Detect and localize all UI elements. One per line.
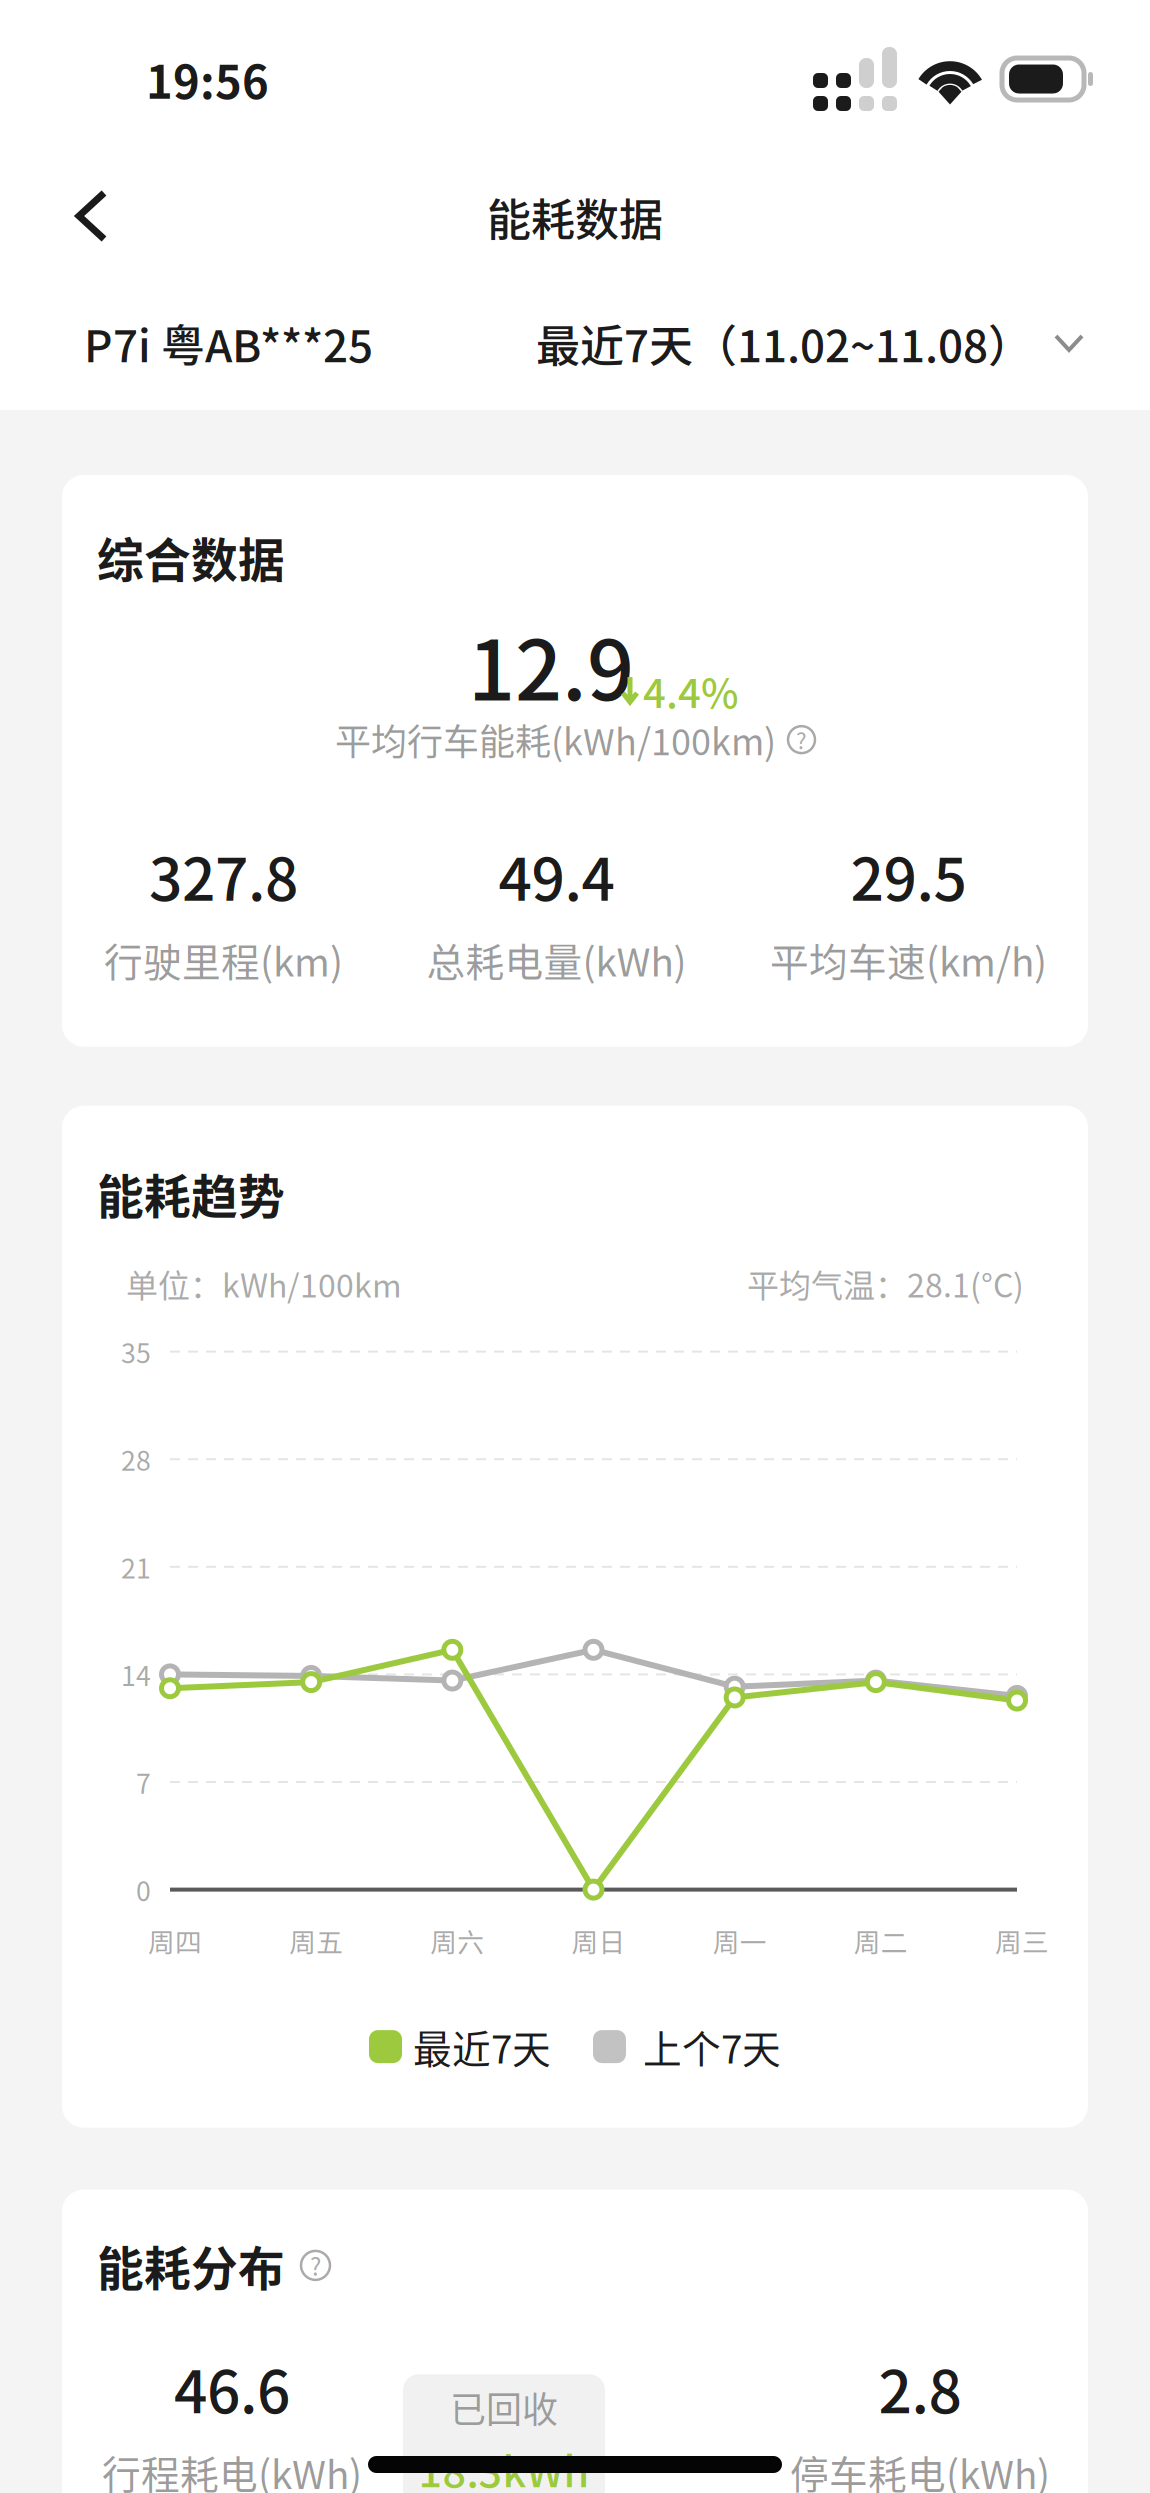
staticText: 周五 [289,1921,343,1960]
staticText: 327.8 [149,833,298,918]
staticText: 21 [121,1547,151,1586]
staticText: 综合数据 [97,523,285,591]
staticText: 周日 [571,1921,625,1960]
staticText: 上个7天 [643,2019,781,2075]
staticText: 12.9 [468,605,634,724]
staticText: 29.5 [850,833,966,918]
staticText: 已回收 [450,2381,558,2433]
staticText: 能耗数据 [487,185,663,249]
staticText: 能耗分布 [97,2232,285,2299]
staticText: 能耗趋势 [97,1160,285,1227]
staticText: 2.8 [878,2345,961,2430]
staticText: 行程耗电(kWh) [102,2444,362,2493]
staticText: 最近7天（11.02~11.08） [536,311,1032,375]
staticText: ? [796,723,807,756]
button[interactable]: Back [0,167,148,267]
staticText: 最近7天 [413,2019,551,2075]
staticText: 平均行车能耗(kWh/100km) [335,714,776,766]
staticText: 4.4% [643,662,739,719]
staticText: 停车耗电(kWh) [790,2444,1050,2493]
staticText: 18.3kWh [418,2439,589,2493]
button[interactable]: 最近7天（11.02~11.08） [536,287,1150,399]
staticText: 平均气温：28.1(°C) [747,1260,1024,1307]
staticText: 周一 [713,1921,767,1960]
staticText: 46.6 [174,2345,290,2430]
staticText: P7i 粤AB***25 [84,311,373,375]
staticText: 14 [121,1655,151,1694]
button[interactable]: P7i 粤AB***25 [0,287,373,399]
staticText: 周三 [995,1921,1049,1960]
staticText: 19:56 [146,46,269,112]
staticText: 周二 [854,1921,908,1960]
staticText: 单位：kWh/100km [126,1260,402,1307]
staticText: 周四 [148,1921,202,1960]
staticText: 35 [121,1332,151,1371]
staticText: 7 [136,1763,151,1801]
staticText: ? [310,2248,321,2283]
staticText: 总耗电量(kWh) [426,932,686,988]
staticText: 行驶里程(km) [104,932,343,988]
staticText: 平均车速(km/h) [770,932,1047,988]
staticText: 0 [136,1870,151,1909]
staticText: 周六 [430,1921,484,1960]
staticText: 49.4 [498,833,614,918]
staticText: 28 [121,1440,151,1478]
